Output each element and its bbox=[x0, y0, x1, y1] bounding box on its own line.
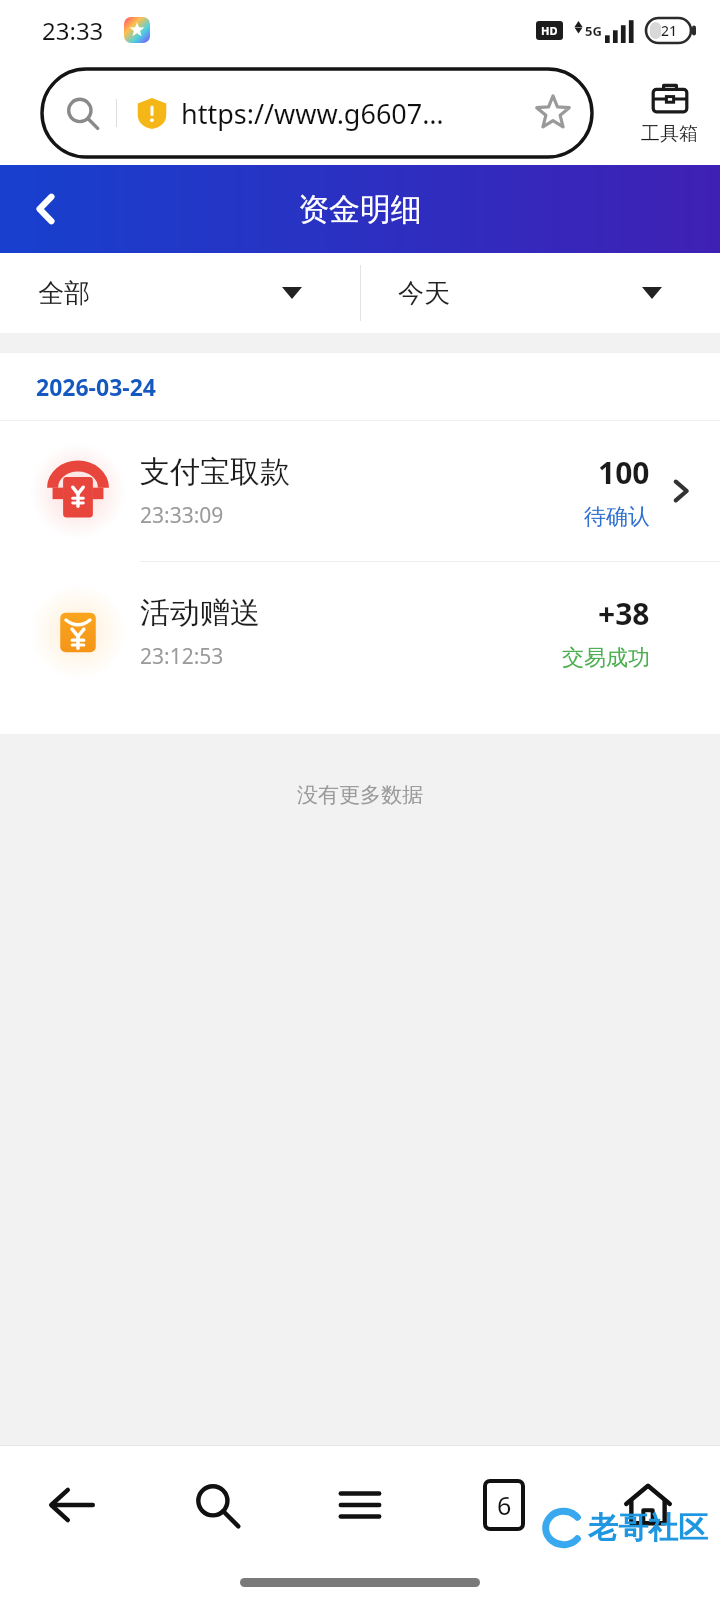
staticText: https://www.g6607… bbox=[181, 95, 444, 132]
staticText: 100 bbox=[598, 452, 650, 493]
staticText: 23:33:09 bbox=[140, 501, 224, 530]
staticText: 交易成功 bbox=[562, 644, 650, 672]
staticText: 活动赠送 bbox=[140, 594, 260, 632]
button[interactable]: 搜索 bbox=[144, 1446, 288, 1564]
staticText: 支付宝取款 bbox=[140, 453, 290, 491]
staticText: 没有更多数据 bbox=[297, 782, 423, 808]
staticText: 全部 bbox=[38, 277, 90, 310]
staticText: 5G bbox=[585, 22, 602, 40]
staticText: 23:33 bbox=[42, 14, 104, 47]
button[interactable]: 主页 bbox=[576, 1446, 720, 1564]
button[interactable]: 标签页 bbox=[432, 1446, 576, 1564]
staticText: HD bbox=[541, 23, 558, 38]
staticText: 今天 bbox=[398, 277, 450, 310]
button[interactable]: 后退 bbox=[0, 1446, 144, 1564]
button[interactable]: 菜单 bbox=[288, 1446, 432, 1564]
button[interactable]: 今天 bbox=[360, 253, 720, 333]
button[interactable]: https://www.g6607… bbox=[42, 69, 592, 157]
staticText: 21 bbox=[661, 21, 678, 40]
staticText: 老哥社区 bbox=[588, 1509, 708, 1547]
staticText: 2026-03-24 bbox=[36, 371, 156, 402]
staticText: 23:12:53 bbox=[140, 642, 224, 671]
staticText: 待确认 bbox=[584, 503, 650, 531]
button[interactable]: 工具箱 bbox=[641, 79, 698, 146]
button[interactable]: 全部 bbox=[0, 253, 360, 333]
staticText: 资金明细 bbox=[298, 190, 422, 229]
button[interactable]: 活动赠送 bbox=[0, 562, 720, 702]
staticText: 工具箱 bbox=[641, 122, 698, 146]
staticText: +38 bbox=[598, 593, 650, 634]
staticText: 6 bbox=[497, 1488, 512, 1522]
button[interactable]: 返回 bbox=[14, 177, 78, 241]
button[interactable]: 支付宝取款 bbox=[0, 421, 720, 561]
